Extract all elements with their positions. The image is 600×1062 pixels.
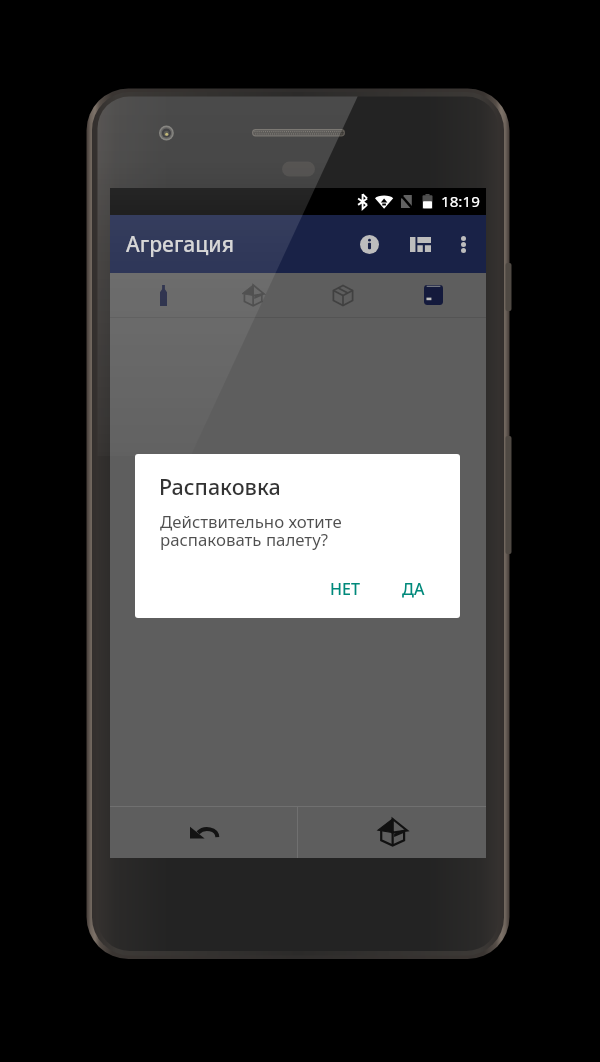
- button[interactable]: Информация: [345, 220, 393, 268]
- button[interactable]: Вид: [396, 220, 444, 268]
- staticText: ДА: [402, 578, 425, 600]
- staticText: Действительно хотите распаковать палету?: [160, 510, 342, 551]
- button[interactable]: Бутылка: [118, 273, 208, 317]
- staticText: Распаковка: [159, 472, 281, 501]
- staticText: 18:19: [441, 191, 480, 212]
- button[interactable]: Палета: [388, 273, 478, 317]
- button[interactable]: Распаковать: [298, 807, 486, 858]
- staticText: НЕТ: [330, 578, 360, 600]
- button[interactable]: Коробка: [298, 273, 388, 317]
- button[interactable]: ДА: [388, 569, 439, 609]
- staticText: Агрегация: [126, 230, 234, 259]
- button[interactable]: Отмена: [110, 807, 297, 858]
- button[interactable]: Ещё: [439, 220, 487, 268]
- button[interactable]: НЕТ: [316, 569, 374, 609]
- button[interactable]: Короб: [208, 273, 298, 317]
